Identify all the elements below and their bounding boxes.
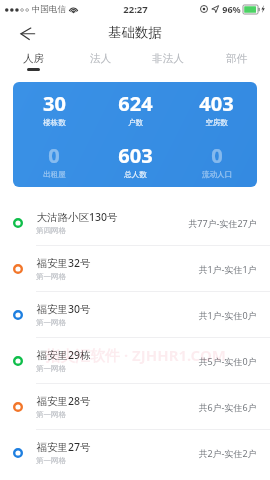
staticText: 非法人 [152, 52, 184, 65]
button[interactable]: 大沽路小区130号 [0, 200, 270, 245]
staticText: 0 [48, 142, 60, 169]
button[interactable]: 部件 [202, 47, 270, 76]
staticText: 福安里30号 [36, 302, 91, 316]
staticText: 楼栋数 [43, 118, 66, 127]
staticText: 空房数 [205, 118, 228, 127]
staticText: 403 [199, 90, 234, 117]
staticText: 共6户-实住6户 [198, 401, 257, 413]
staticText: 第四网格 [36, 226, 66, 235]
staticText: 大沽路小区130号 [36, 210, 118, 224]
staticText: 共77户-实住27户 [188, 217, 257, 229]
button[interactable]: 非法人 [134, 47, 202, 76]
staticText: 福安里27号 [36, 440, 91, 454]
staticText: 出租屋 [43, 170, 66, 179]
staticText: 共2户-实住2户 [198, 447, 257, 459]
button[interactable]: 30 [13, 82, 257, 187]
staticText: 福安里28号 [36, 394, 91, 408]
button[interactable]: 福安里28号 [0, 384, 270, 429]
staticText: 第一网格 [36, 410, 66, 419]
button[interactable]: 人房 [0, 47, 67, 76]
staticText: 基础数据 [108, 24, 162, 41]
staticText: 30 [43, 90, 66, 117]
staticText: 共1户-实住1户 [198, 263, 257, 275]
staticText: 总人数 [124, 170, 147, 179]
staticText: 第一网格 [36, 318, 66, 327]
staticText: 603 [118, 142, 153, 169]
staticText: 人房 [23, 52, 44, 65]
staticText: 624 [118, 90, 153, 117]
staticText: 法人 [90, 52, 111, 65]
button[interactable]: Back [14, 20, 40, 46]
staticText: 22:27 [123, 3, 148, 16]
staticText: 96% [222, 3, 241, 15]
button[interactable]: 福安里29栋 [0, 338, 270, 383]
button[interactable]: 福安里27号 [0, 430, 270, 475]
staticText: 流动人口 [202, 170, 232, 179]
button[interactable]: 福安里32号 [0, 246, 270, 291]
staticText: 0 [211, 142, 223, 169]
staticText: 福安里29栋 [36, 348, 91, 362]
staticText: 户数 [128, 118, 143, 127]
button[interactable]: 法人 [67, 47, 134, 76]
staticText: 第一网格 [36, 272, 66, 281]
staticText: 中国电信 [32, 4, 66, 15]
staticText: 共5户-实住0户 [198, 355, 257, 367]
button[interactable]: 福安里30号 [0, 292, 270, 337]
staticText: 第一网格 [36, 364, 66, 373]
staticText: 指尖汇软件 · ZJHHR1.COM [45, 345, 226, 365]
staticText: 共1户-实住0户 [198, 309, 257, 321]
staticText: 部件 [226, 52, 247, 65]
staticText: 第一网格 [36, 456, 66, 465]
staticText: 福安里32号 [36, 256, 91, 270]
